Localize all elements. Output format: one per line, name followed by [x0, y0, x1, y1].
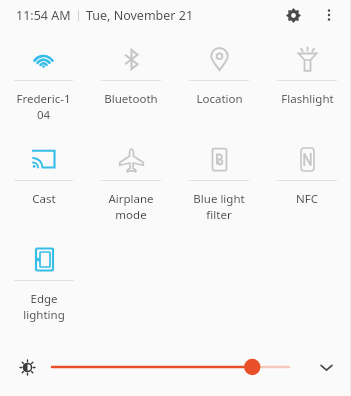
button[interactable]: Frederic-104 — [0, 38, 87, 122]
button[interactable]: Bluetooth — [87, 38, 175, 107]
button[interactable]: Settings — [279, 1, 307, 29]
button[interactable]: Edge lighting — [0, 238, 88, 322]
button[interactable]: Brightness slider — [52, 356, 289, 378]
staticText: Frederic-104 — [14, 91, 73, 122]
button[interactable]: NFC — [263, 138, 351, 207]
staticText: Location — [196, 91, 243, 107]
staticText: Cast — [32, 191, 56, 207]
staticText: Tue, November 21 — [86, 7, 194, 24]
button[interactable]: Airplane mode — [87, 138, 175, 222]
staticText: Bluetooth — [104, 91, 158, 107]
button[interactable]: Auto brightness — [16, 356, 38, 378]
button[interactable]: Location — [175, 38, 263, 107]
button[interactable]: Flashlight — [263, 38, 351, 107]
staticText: Edge lighting — [14, 291, 74, 322]
button[interactable]: Expand — [313, 354, 339, 380]
button[interactable]: Blue light filter — [175, 138, 263, 222]
staticText: Airplane mode — [108, 191, 154, 222]
staticText: Blue light filter — [193, 191, 245, 222]
button[interactable]: More options — [317, 3, 341, 27]
staticText: NFC — [296, 191, 318, 207]
button[interactable]: Cast — [0, 138, 87, 207]
staticText: 11:54 AM — [16, 7, 71, 24]
staticText: Flashlight — [281, 91, 334, 107]
